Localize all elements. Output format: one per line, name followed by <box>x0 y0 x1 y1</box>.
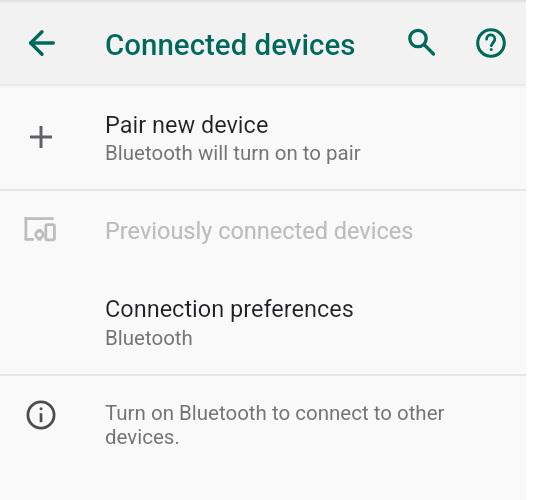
button[interactable]: Connection preferences <box>0 269 526 374</box>
button[interactable]: Search <box>398 18 446 66</box>
staticText: Bluetooth will turn on to pair <box>105 141 361 165</box>
staticText: Connection preferences <box>105 295 354 323</box>
staticText: Previously connected devices <box>105 217 414 245</box>
staticText: Bluetooth <box>105 326 193 350</box>
staticText: Pair new device <box>105 111 269 139</box>
staticText: Turn on Bluetooth to connect to other de… <box>105 401 465 449</box>
button[interactable]: Previously connected devices <box>0 191 526 269</box>
button[interactable]: Navigate up <box>18 19 66 67</box>
button[interactable]: Help <box>467 19 515 67</box>
staticText: Connected devices <box>105 28 356 63</box>
button[interactable]: Pair new device <box>0 84 526 189</box>
